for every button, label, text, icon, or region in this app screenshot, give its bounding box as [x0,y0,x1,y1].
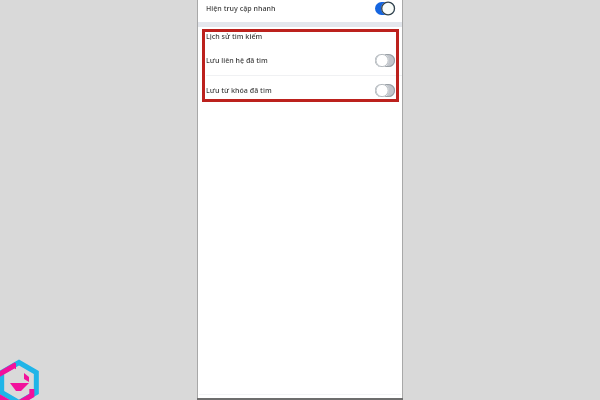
button[interactable]: Lưu liên hệ đã tìm [198,46,402,75]
button[interactable]: Save searched contacts, off [375,54,395,67]
button[interactable]: Lưu từ khóa đã tìm [198,76,402,105]
staticText: Lịch sử tìm kiếm [206,32,263,42]
button[interactable]: Show quick access, on [375,2,395,15]
button[interactable]: Hiện truy cập nhanh [198,0,402,17]
staticText: Lưu từ khóa đã tìm [206,86,272,96]
staticText: Hiện truy cập nhanh [206,4,276,14]
staticText: Lưu liên hệ đã tìm [206,56,268,66]
button[interactable]: Save searched keywords, off [375,84,395,97]
button[interactable]: Lịch sử tìm kiếm [198,27,402,46]
